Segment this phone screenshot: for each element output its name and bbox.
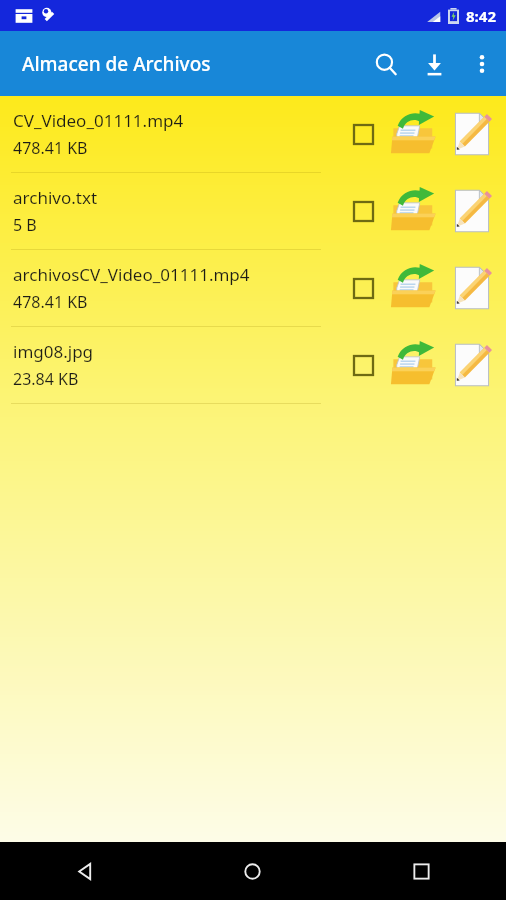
staticText: img08.jpg xyxy=(13,340,94,363)
staticText: CV_Video_01111.mp4 xyxy=(13,109,184,132)
staticText: 478.41 KB xyxy=(13,291,88,313)
button[interactable]: Recent apps xyxy=(337,842,506,900)
button[interactable]: Rename file xyxy=(443,259,501,317)
staticText: 478.41 KB xyxy=(13,137,88,159)
button[interactable]: Back xyxy=(0,842,168,900)
button[interactable]: Download xyxy=(410,40,458,88)
button[interactable]: Select file xyxy=(341,266,385,310)
button[interactable]: CV_Video_01111.mp4 xyxy=(0,96,506,173)
button[interactable]: Select file xyxy=(341,343,385,387)
button[interactable]: Rename file xyxy=(443,182,501,240)
button[interactable]: More options xyxy=(458,40,506,88)
button[interactable]: Move to folder xyxy=(385,105,443,163)
button[interactable]: Move to folder xyxy=(385,182,443,240)
button[interactable]: img08.jpg xyxy=(0,327,506,404)
button[interactable]: archivosCV_Video_01111.mp4 xyxy=(0,250,506,327)
staticText: archivosCV_Video_01111.mp4 xyxy=(13,263,250,286)
staticText: 23.84 KB xyxy=(13,368,79,390)
button[interactable]: Home xyxy=(168,842,337,900)
staticText: archivo.txt xyxy=(13,186,98,209)
staticText: 8:42 xyxy=(466,6,496,26)
staticText: Almacen de Archivos xyxy=(22,51,211,77)
button[interactable]: Select file xyxy=(341,112,385,156)
button[interactable]: Move to folder xyxy=(385,336,443,394)
button[interactable]: Move to folder xyxy=(385,259,443,317)
button[interactable]: archivo.txt xyxy=(0,173,506,250)
button[interactable]: Select file xyxy=(341,189,385,233)
staticText: 5 B xyxy=(13,214,37,236)
button[interactable]: Rename file xyxy=(443,105,501,163)
button[interactable]: Rename file xyxy=(443,336,501,394)
button[interactable]: Search xyxy=(362,40,410,88)
